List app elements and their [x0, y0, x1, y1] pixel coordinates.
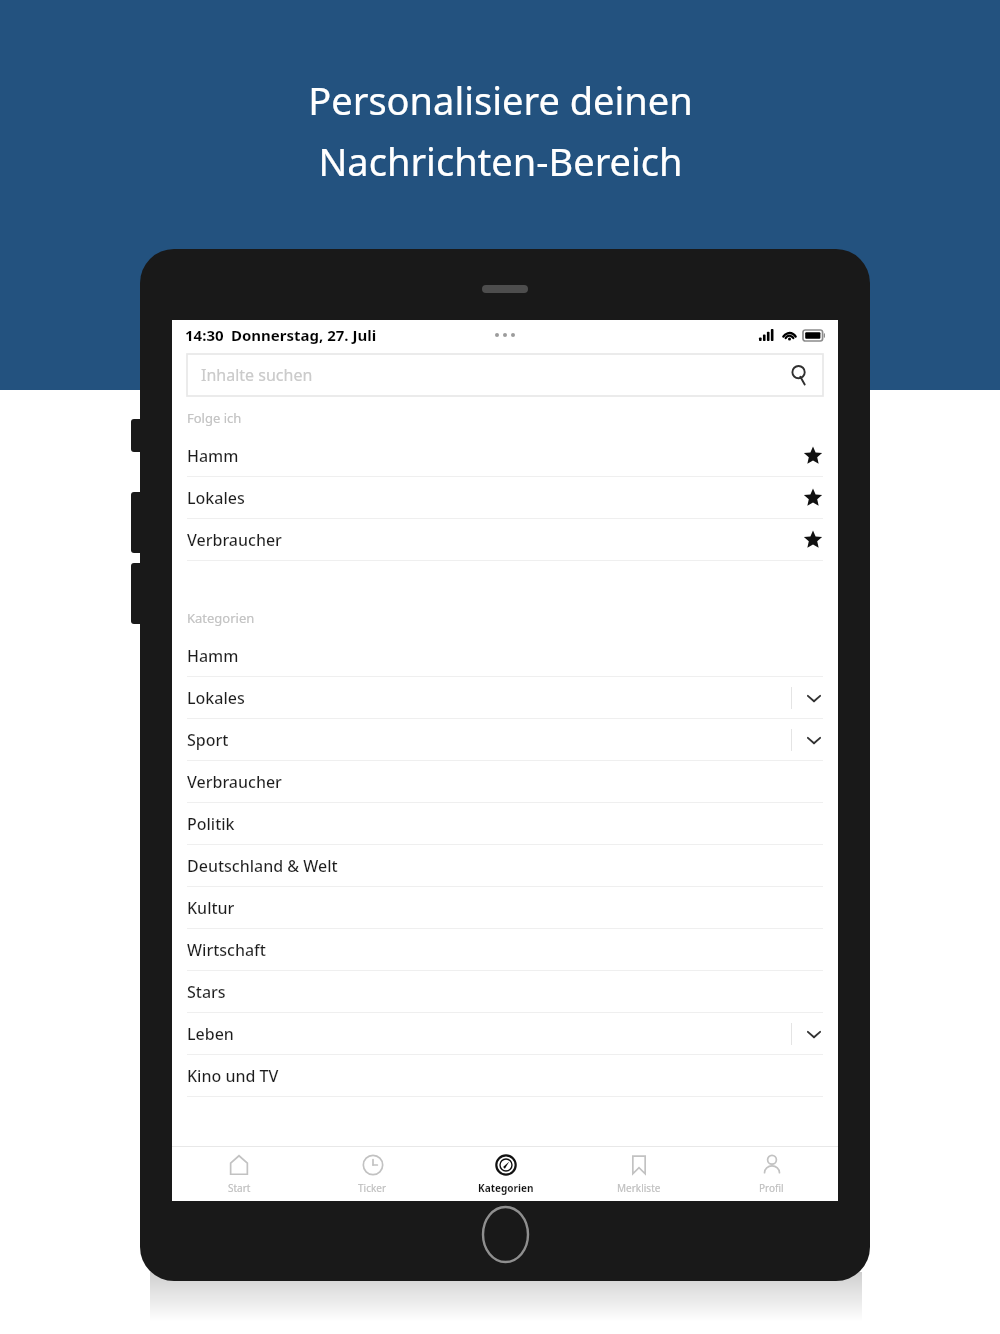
staticText: Merkliste: [617, 1181, 661, 1195]
button[interactable]: Profil: [705, 1147, 838, 1201]
button[interactable]: Suchen: [788, 364, 810, 386]
other: Folgen aufheben: [803, 530, 823, 550]
button[interactable]: Unterkategorien anzeigen: [805, 731, 823, 749]
staticText: Kultur: [187, 897, 235, 919]
button[interactable]: Kategorien: [439, 1147, 572, 1201]
staticText: Hamm: [187, 445, 239, 467]
button[interactable]: Unterkategorien anzeigen: [805, 1025, 823, 1043]
staticText: Leben: [187, 1023, 234, 1045]
button[interactable]: Lokales: [172, 677, 838, 719]
staticText: Ticker: [358, 1181, 387, 1195]
button[interactable]: Hamm: [172, 435, 838, 477]
staticText: Nachrichten-Bereich: [318, 135, 683, 187]
staticText: Personalisiere deinen: [308, 74, 693, 126]
staticText: Donnerstag, 27. Juli: [231, 325, 377, 345]
staticText: Inhalte suchen: [201, 364, 313, 386]
button[interactable]: Kino und TV: [172, 1055, 838, 1097]
button[interactable]: Verbraucher: [172, 761, 838, 803]
staticText: Kategorien: [478, 1181, 534, 1195]
staticText: Politik: [187, 813, 235, 835]
staticText: Kategorien: [187, 609, 255, 627]
staticText: Folge ich: [187, 409, 242, 427]
staticText: Hamm: [187, 645, 239, 667]
button[interactable]: Merkliste: [572, 1147, 705, 1201]
button[interactable]: Verbraucher: [172, 519, 838, 561]
staticText: Verbraucher: [187, 529, 282, 551]
button[interactable]: Inhalte suchen: [187, 354, 823, 396]
staticText: Start: [228, 1181, 251, 1195]
staticText: Sport: [187, 729, 229, 751]
button[interactable]: Stars: [172, 971, 838, 1013]
staticText: Lokales: [187, 687, 245, 709]
staticText: Lokales: [187, 487, 245, 509]
other: Folgen aufheben: [803, 488, 823, 508]
staticText: Stars: [187, 981, 226, 1003]
button[interactable]: Wirtschaft: [172, 929, 838, 971]
button[interactable]: Politik: [172, 803, 838, 845]
staticText: 14:30: [185, 325, 224, 345]
button[interactable]: Kultur: [172, 887, 838, 929]
staticText: Verbraucher: [187, 771, 282, 793]
button[interactable]: Leben: [172, 1013, 838, 1055]
other: Folgen aufheben: [803, 446, 823, 466]
staticText: Kino und TV: [187, 1065, 279, 1087]
button[interactable]: Hamm: [172, 635, 838, 677]
button[interactable]: Ticker: [306, 1147, 439, 1201]
button[interactable]: Start: [172, 1147, 306, 1201]
button[interactable]: Unterkategorien anzeigen: [805, 689, 823, 707]
staticText: Wirtschaft: [187, 939, 266, 961]
staticText: Deutschland & Welt: [187, 855, 338, 877]
button[interactable]: Deutschland & Welt: [172, 845, 838, 887]
staticText: Profil: [759, 1181, 784, 1195]
button[interactable]: Sport: [172, 719, 838, 761]
button[interactable]: Lokales: [172, 477, 838, 519]
